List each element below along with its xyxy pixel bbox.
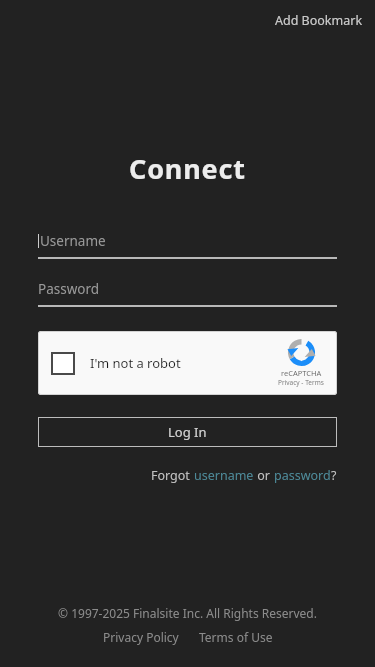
staticText: Forgot	[151, 467, 194, 484]
staticText: password	[274, 467, 331, 484]
button[interactable]: Log In	[38, 417, 337, 447]
staticText: Terms of Use	[199, 629, 273, 645]
button[interactable]: I'm not a robot checkbox	[38, 331, 337, 395]
staticText: Log In	[168, 423, 207, 441]
staticText: © 1997-2025 Finalsite Inc. All Rights Re…	[58, 605, 317, 621]
staticText: Username	[40, 232, 106, 250]
staticText: Password	[38, 280, 100, 298]
button[interactable]: Add Bookmark	[271, 10, 367, 31]
staticText: Add Bookmark	[275, 12, 363, 29]
button[interactable]: password	[274, 467, 331, 484]
staticText: ?	[331, 467, 337, 484]
button[interactable]: Username	[38, 232, 337, 259]
staticText: Privacy - Terms	[278, 378, 324, 387]
staticText: Privacy Policy	[103, 629, 179, 645]
staticText: or	[254, 467, 274, 484]
button[interactable]: I'm not a robot checkbox	[51, 352, 75, 375]
staticText: I'm not a robot	[90, 354, 181, 372]
button[interactable]: Privacy Policy	[101, 629, 181, 645]
button[interactable]: Password	[38, 280, 337, 307]
staticText: Connect	[129, 150, 246, 187]
button[interactable]: Terms of Use	[197, 629, 275, 645]
staticText: username	[194, 467, 254, 484]
staticText: reCAPTCHA	[281, 368, 322, 378]
button[interactable]: username	[194, 467, 254, 484]
